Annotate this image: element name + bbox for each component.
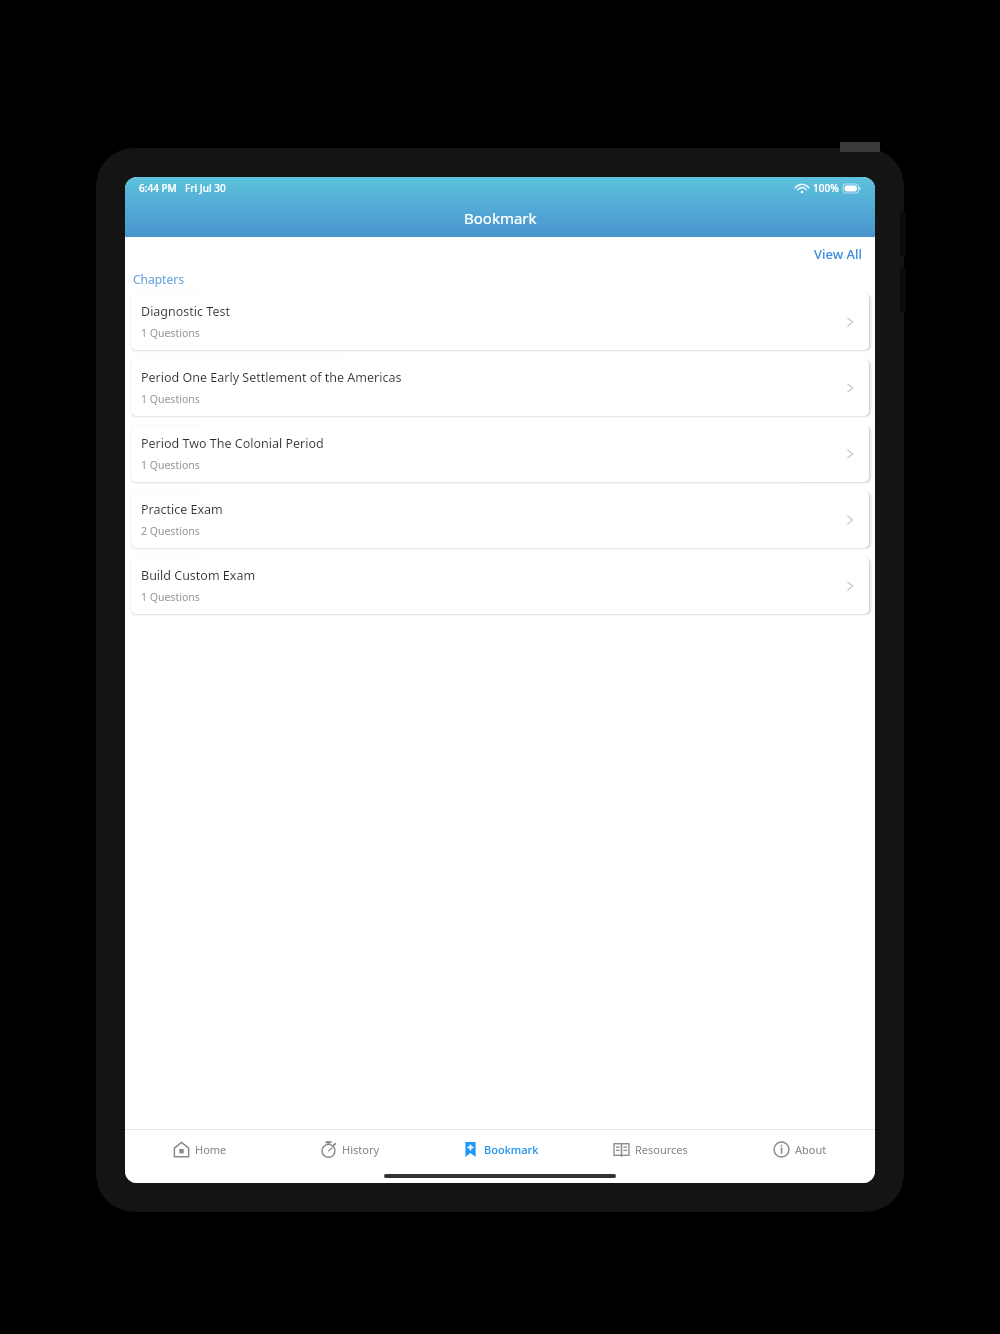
staticText: Period One Early Settlement of the Ameri…	[141, 369, 402, 386]
staticText: About	[795, 1142, 827, 1157]
button[interactable]: History	[275, 1130, 425, 1168]
button[interactable]: Period One Early Settlement of the Ameri…	[131, 359, 869, 416]
staticText: 1 Questions	[141, 392, 200, 406]
staticText: 1 Questions	[141, 590, 200, 604]
staticText: 1 Questions	[141, 458, 200, 472]
staticText: 2 Questions	[141, 524, 200, 538]
staticText: 6:44 PM	[139, 181, 177, 195]
staticText: 100%	[813, 181, 839, 195]
button[interactable]: Home	[125, 1130, 275, 1168]
button[interactable]: View All	[802, 241, 875, 267]
staticText: Bookmark	[464, 208, 537, 228]
button[interactable]: Build Custom Exam	[131, 557, 869, 614]
staticText: Resources	[635, 1142, 688, 1157]
staticText: Chapters	[133, 271, 184, 287]
staticText: Period Two The Colonial Period	[141, 435, 324, 452]
staticText: 1 Questions	[141, 326, 200, 340]
staticText: Diagnostic Test	[141, 303, 230, 320]
button[interactable]: Bookmark	[425, 1130, 575, 1168]
staticText: Bookmark	[484, 1142, 539, 1157]
staticText: Fri Jul 30	[185, 181, 226, 195]
staticText: Home	[195, 1142, 227, 1157]
button[interactable]: About	[725, 1130, 875, 1168]
staticText: View All	[814, 245, 863, 263]
button[interactable]: Resources	[575, 1130, 725, 1168]
staticText: History	[342, 1142, 380, 1157]
button[interactable]: Practice Exam	[131, 491, 869, 548]
staticText: Practice Exam	[141, 501, 223, 518]
button[interactable]: Diagnostic Test	[131, 293, 869, 350]
staticText: Build Custom Exam	[141, 567, 256, 584]
button[interactable]: Period Two The Colonial Period	[131, 425, 869, 482]
